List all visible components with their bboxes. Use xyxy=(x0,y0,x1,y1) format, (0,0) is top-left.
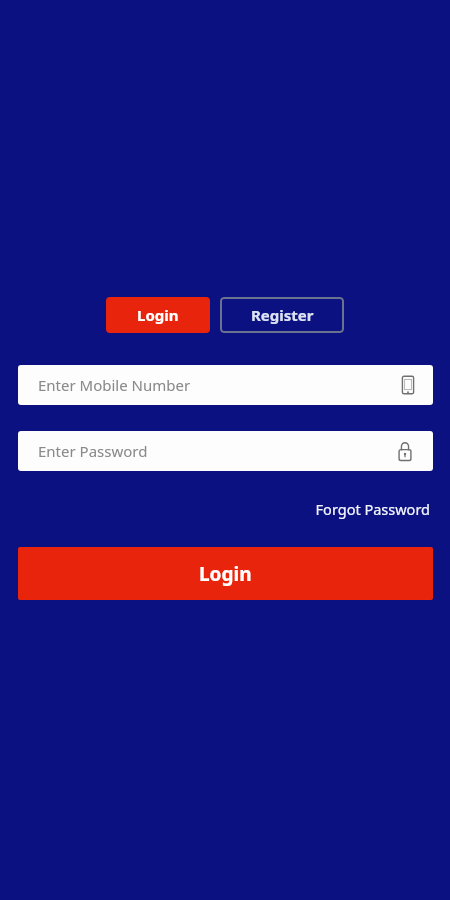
button[interactable]: Register xyxy=(220,297,344,333)
button[interactable]: Login xyxy=(18,547,433,600)
staticText: Enter Password xyxy=(38,441,397,461)
staticText: Enter Mobile Number xyxy=(38,375,401,395)
staticText: Forgot Password xyxy=(315,499,430,519)
button[interactable]: Enter Password xyxy=(18,431,433,471)
button[interactable]: Login xyxy=(106,297,210,333)
staticText: Login xyxy=(199,561,252,587)
staticText: Login xyxy=(137,305,179,325)
button[interactable]: Forgot Password xyxy=(313,497,432,521)
other: Password xyxy=(397,441,413,462)
button[interactable]: Enter Mobile Number xyxy=(18,365,433,405)
other: Mobile number xyxy=(401,375,415,395)
staticText: Register xyxy=(251,305,314,325)
